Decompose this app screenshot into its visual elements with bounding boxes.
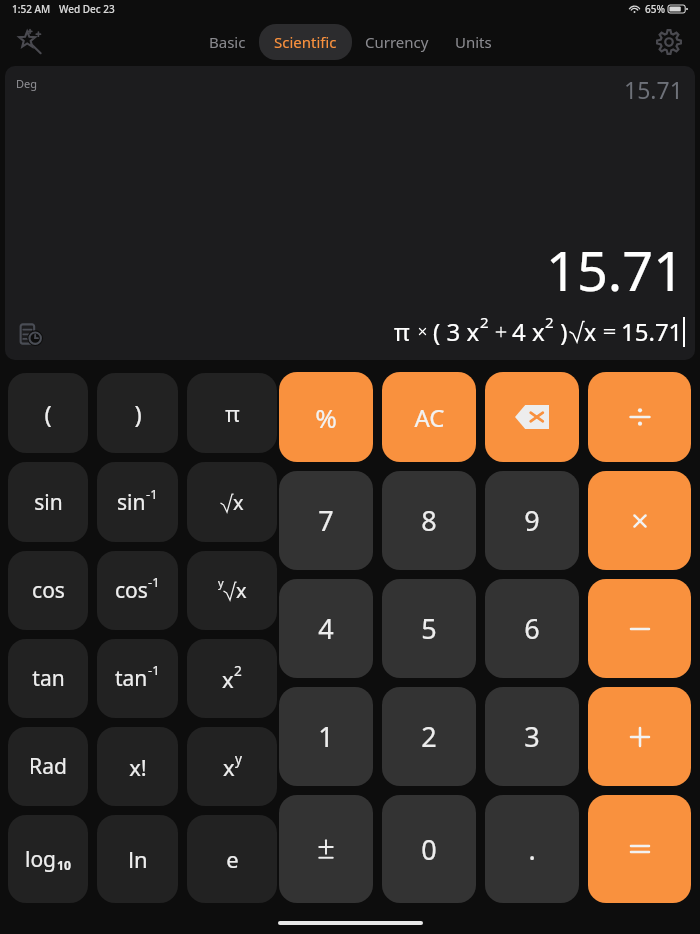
- button[interactable]: sin: [97, 462, 178, 542]
- staticText: Scientific: [274, 32, 337, 52]
- staticText: Units: [455, 32, 492, 52]
- staticText: Wed Dec 23: [59, 2, 115, 16]
- button[interactable]: e: [187, 815, 277, 903]
- button[interactable]: plusminus: [279, 795, 373, 903]
- staticText: AC: [414, 401, 445, 434]
- staticText: 65%: [645, 2, 665, 16]
- staticText: 15.71: [546, 233, 685, 307]
- staticText: tan: [32, 664, 65, 693]
- button[interactable]: x: [187, 727, 277, 806]
- button[interactable]: minus: [588, 579, 691, 678]
- button[interactable]: %: [279, 372, 373, 462]
- button[interactable]: Basic: [196, 24, 259, 60]
- button[interactable]: times: [588, 471, 691, 570]
- button[interactable]: cos: [8, 551, 88, 630]
- button[interactable]: log: [8, 815, 88, 903]
- staticText: sin: [117, 488, 146, 517]
- staticText: 3: [524, 718, 540, 755]
- staticText: x: [584, 316, 597, 347]
- staticText: x: [236, 577, 247, 604]
- button[interactable]: Magic: [10, 22, 50, 62]
- staticText: Deg: [16, 76, 37, 91]
- button[interactable]: 4: [279, 579, 373, 678]
- button[interactable]: Backspace: [485, 372, 579, 462]
- button[interactable]: plus: [588, 687, 691, 786]
- button[interactable]: 8: [382, 471, 476, 570]
- button[interactable]: x: [187, 462, 277, 542]
- staticText: 1:52 AM: [12, 2, 51, 16]
- staticText: 5: [421, 610, 437, 647]
- button[interactable]: 1: [279, 687, 373, 786]
- button[interactable]: Currency: [352, 24, 442, 60]
- staticText: y: [235, 749, 242, 768]
- button[interactable]: Units: [442, 24, 505, 60]
- button[interactable]: 9: [485, 471, 579, 570]
- staticText: 2: [545, 312, 554, 332]
- button[interactable]: 2: [382, 687, 476, 786]
- staticText: (: [44, 397, 52, 430]
- staticText: -1: [146, 485, 158, 503]
- staticText: ln: [128, 844, 148, 874]
- staticText: y: [218, 575, 224, 590]
- button[interactable]: π: [187, 373, 277, 453]
- button[interactable]: y: [187, 551, 277, 630]
- staticText: 4: [318, 610, 334, 647]
- button[interactable]: 6: [485, 579, 579, 678]
- button[interactable]: tan: [97, 639, 178, 718]
- staticText: cos: [32, 576, 65, 605]
- staticText: -1: [148, 661, 160, 679]
- staticText: cos: [115, 576, 148, 605]
- button[interactable]: 0: [382, 795, 476, 903]
- staticText: e: [226, 844, 239, 874]
- button[interactable]: (: [8, 373, 88, 453]
- button[interactable]: cos: [97, 551, 178, 630]
- staticText: 2: [421, 718, 437, 755]
- staticText: 6: [524, 610, 540, 647]
- staticText: ): [554, 315, 568, 348]
- button[interactable]: x: [187, 639, 277, 718]
- button[interactable]: 7: [279, 471, 373, 570]
- staticText: 8: [421, 502, 437, 539]
- staticText: 4 x: [512, 315, 545, 348]
- staticText: 15.71: [624, 74, 683, 105]
- staticText: 0: [421, 831, 437, 868]
- button[interactable]: ): [97, 373, 178, 453]
- button[interactable]: tan: [8, 639, 88, 718]
- staticText: 15.71: [621, 315, 683, 348]
- button[interactable]: ln: [97, 815, 178, 903]
- staticText: π: [225, 398, 240, 428]
- staticText: tan: [115, 664, 148, 693]
- staticText: x!: [129, 752, 147, 782]
- staticText: ): [134, 397, 142, 430]
- button[interactable]: 3: [485, 687, 579, 786]
- staticText: ( 3 x: [433, 315, 480, 348]
- staticText: 9: [524, 502, 540, 539]
- staticText: 1: [318, 718, 334, 755]
- staticText: 2: [234, 661, 242, 680]
- staticText: log: [25, 845, 57, 874]
- button[interactable]: History: [14, 318, 46, 350]
- staticText: π: [394, 315, 410, 348]
- button[interactable]: equals: [588, 795, 691, 903]
- staticText: -1: [148, 573, 160, 591]
- button[interactable]: Settings: [650, 23, 688, 61]
- button[interactable]: x!: [97, 727, 178, 806]
- staticText: x: [233, 489, 244, 516]
- staticText: 10: [57, 857, 71, 874]
- button[interactable]: sin: [8, 462, 88, 542]
- staticText: Rad: [29, 752, 67, 781]
- button[interactable]: 5: [382, 579, 476, 678]
- staticText: Currency: [365, 32, 429, 52]
- button[interactable]: AC: [382, 372, 476, 462]
- button[interactable]: divide: [588, 372, 691, 462]
- button[interactable]: Scientific: [259, 24, 352, 60]
- staticText: .: [528, 831, 536, 868]
- staticText: %: [315, 400, 337, 435]
- button[interactable]: Rad: [8, 727, 88, 806]
- staticText: sin: [34, 488, 63, 517]
- staticText: Basic: [209, 32, 246, 52]
- staticText: x: [223, 752, 235, 782]
- button[interactable]: .: [485, 795, 579, 903]
- staticText: 7: [318, 502, 334, 539]
- staticText: x: [222, 664, 234, 694]
